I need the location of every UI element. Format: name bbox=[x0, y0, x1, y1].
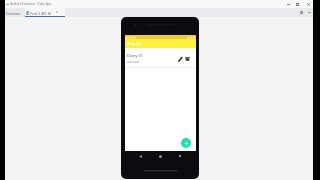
button[interactable]: Settings bbox=[297, 8, 305, 17]
button[interactable]: Add entry bbox=[181, 138, 191, 148]
staticText: Diary 01 bbox=[127, 53, 144, 59]
staticText: sub text bbox=[127, 60, 140, 64]
staticText: Pixel 2 API 30 bbox=[30, 11, 52, 16]
button[interactable]: Back bbox=[136, 152, 144, 160]
button[interactable]: Emulator bbox=[5, 8, 25, 17]
button[interactable]: Diary 01 bbox=[125, 48, 196, 68]
staticText: Emulator bbox=[6, 11, 21, 16]
button[interactable]: Minimize bbox=[284, 0, 293, 8]
staticText: Android Emulator - Diary App bbox=[10, 2, 52, 6]
button[interactable]: Recents bbox=[176, 152, 184, 160]
button[interactable]: Edit bbox=[177, 56, 183, 62]
button[interactable]: Pixel 2 API 30 bbox=[25, 8, 65, 17]
button[interactable]: Maximize bbox=[293, 0, 302, 8]
staticText: Diary App bbox=[127, 42, 142, 46]
button[interactable]: Home bbox=[156, 152, 164, 160]
button[interactable]: Delete bbox=[184, 56, 190, 62]
button[interactable]: Close bbox=[304, 0, 313, 8]
button[interactable]: Collapse bbox=[305, 8, 313, 17]
